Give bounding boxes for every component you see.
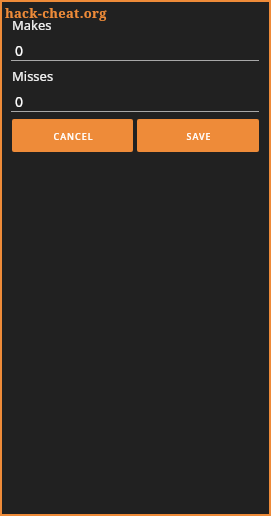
button[interactable]: [11, 12, 259, 64]
button[interactable]: [11, 64, 259, 114]
staticText: SAVE: [186, 130, 212, 142]
staticText: Misses: [12, 67, 54, 85]
staticText: 0: [15, 92, 24, 111]
staticText: hack-cheat.org: [5, 4, 107, 22]
button[interactable]: CANCEL: [12, 119, 133, 152]
button[interactable]: SAVE: [137, 119, 259, 152]
staticText: Makes: [12, 16, 52, 34]
staticText: CANCEL: [53, 130, 94, 142]
staticText: 0: [15, 41, 24, 60]
